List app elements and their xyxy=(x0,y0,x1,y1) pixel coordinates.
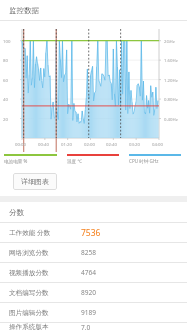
button[interactable]: 工作效能 分数 xyxy=(0,223,187,242)
staticText: 40 xyxy=(3,96,8,102)
staticText: 电池电量 % xyxy=(4,158,28,164)
staticText: 00:00 xyxy=(15,141,26,147)
staticText: 视频播放分数 xyxy=(9,269,81,277)
staticText: 20 xyxy=(3,116,8,122)
staticText: 监控数据 xyxy=(9,6,39,15)
button[interactable]: 操作系统版本 xyxy=(0,323,187,330)
staticText: 8920 xyxy=(81,288,97,297)
staticText: 工作效能 分数 xyxy=(9,228,81,237)
staticText: 100 xyxy=(3,38,11,44)
staticText: CPU 时钟 GHz xyxy=(129,158,159,164)
button[interactable]: 网络浏览分数 xyxy=(0,243,187,262)
button[interactable]: 详细图表 xyxy=(13,173,57,190)
button[interactable]: 视频播放分数 xyxy=(0,263,187,282)
staticText: 1.60Hz xyxy=(164,57,178,63)
button[interactable]: 文档编写分数 xyxy=(0,283,187,302)
staticText: 00:40 xyxy=(38,141,49,147)
staticText: 网络浏览分数 xyxy=(9,249,81,257)
staticText: 02:40 xyxy=(106,141,117,147)
staticText: 04:00 xyxy=(152,141,163,147)
staticText: 03:20 xyxy=(129,141,140,147)
staticText: 操作系统版本 xyxy=(9,323,81,330)
staticText: 温度 ℃ xyxy=(67,158,82,164)
staticText: 详细图表 xyxy=(21,177,49,186)
staticText: 8258 xyxy=(81,248,97,257)
staticText: 02:00 xyxy=(84,141,95,147)
staticText: 分数 xyxy=(9,208,24,217)
staticText: 7536 xyxy=(81,227,101,239)
staticText: 0.40Hz xyxy=(164,116,178,122)
staticText: 图片编辑分数 xyxy=(9,309,81,317)
staticText: 文档编写分数 xyxy=(9,289,81,297)
staticText: 2GHz xyxy=(164,38,175,44)
staticText: 9189 xyxy=(81,308,97,317)
staticText: 80 xyxy=(3,57,8,63)
staticText: 4764 xyxy=(81,268,97,277)
staticText: 0.80Hz xyxy=(164,96,178,102)
staticText: 60 xyxy=(3,77,8,83)
staticText: 01:20 xyxy=(61,141,72,147)
staticText: 7.0 xyxy=(81,323,91,330)
staticText: 1.20Hz xyxy=(164,77,178,83)
button[interactable]: 图片编辑分数 xyxy=(0,303,187,322)
